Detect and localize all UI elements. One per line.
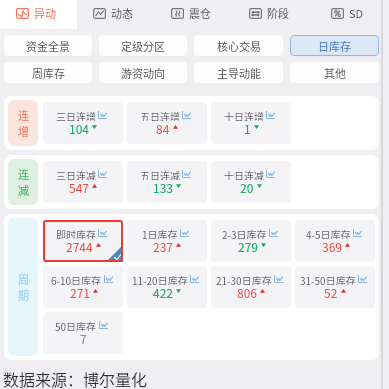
staticText: 31-50日库存	[300, 273, 356, 285]
staticText: 周库存	[32, 65, 65, 81]
button[interactable]: 游资动向	[99, 62, 187, 83]
staticText: 84	[156, 120, 170, 134]
staticText: 三日连增	[56, 109, 96, 121]
button[interactable]: 21-30日库存	[211, 266, 291, 308]
button[interactable]: 三日连减	[43, 161, 123, 203]
staticText: 五日连减	[140, 168, 180, 180]
staticText: 806	[237, 284, 257, 298]
button[interactable]: 日库存	[290, 35, 379, 56]
staticText: 连	[18, 166, 29, 182]
staticText: 547	[69, 179, 89, 193]
button[interactable]: 2-3日库存	[211, 220, 291, 262]
button[interactable]: 定级分区	[99, 35, 187, 56]
button[interactable]: 31-50日库存	[295, 266, 375, 308]
staticText: 20	[240, 179, 254, 193]
button[interactable]: 核心交易	[194, 35, 283, 56]
staticText: 阶段	[267, 5, 289, 21]
button[interactable]: 主导动能	[194, 62, 283, 83]
staticText: 五日连增	[140, 109, 180, 121]
staticText: 游资动向	[121, 65, 165, 81]
staticText: 237	[153, 238, 173, 252]
staticText: 279	[238, 238, 258, 252]
button[interactable]: 震仓	[155, 0, 233, 29]
staticText: 1日库存	[142, 227, 178, 239]
button[interactable]: 阶段	[233, 0, 311, 29]
staticText: 1	[244, 120, 251, 134]
staticText: 2744	[66, 238, 93, 252]
staticText: 增	[18, 123, 29, 139]
staticText: 十日连增	[224, 109, 264, 121]
staticText: 期	[18, 287, 29, 303]
button[interactable]: 11-20日库存	[127, 266, 207, 308]
other: 动态	[93, 8, 106, 19]
other: 震仓	[171, 8, 184, 19]
staticText: 核心交易	[217, 38, 261, 54]
staticText: 422	[153, 284, 173, 298]
staticText: 动态	[111, 5, 133, 21]
staticText: 50日库存	[55, 319, 97, 331]
staticText: 主导动能	[217, 65, 261, 81]
staticText: 数据来源：博尔量化	[3, 367, 148, 389]
staticText: 6-10日库存	[51, 273, 102, 285]
button[interactable]: 五日连减	[127, 161, 207, 203]
other: SD	[331, 8, 344, 19]
other: 阶段	[249, 8, 262, 19]
staticText: 定级分区	[121, 38, 165, 54]
staticText: 减	[18, 182, 29, 198]
staticText: 7	[80, 330, 87, 344]
button[interactable]: 十日连增	[211, 102, 291, 144]
staticText: 其他	[324, 65, 346, 81]
staticText: 271	[70, 284, 90, 298]
button[interactable]: 五日连增	[127, 102, 207, 144]
staticText: 周	[18, 271, 29, 287]
staticText: 4-5日库存	[306, 227, 351, 239]
button[interactable]: 周库存	[4, 62, 92, 83]
staticText: 震仓	[189, 5, 211, 21]
staticText: 133	[153, 179, 173, 193]
staticText: 11-20日库存	[132, 273, 188, 285]
button[interactable]: 三日连增	[43, 102, 123, 144]
button[interactable]: 十日连减	[211, 161, 291, 203]
staticText: 连	[18, 107, 29, 123]
staticText: 异动	[34, 5, 56, 21]
staticText: 21-30日库存	[216, 273, 272, 285]
staticText: SD	[349, 5, 364, 21]
button[interactable]: 其他	[290, 62, 379, 83]
button[interactable]: 50日库存	[43, 312, 123, 354]
staticText: 2-3日库存	[222, 227, 267, 239]
staticText: 三日连减	[56, 168, 96, 180]
button[interactable]: 动态	[77, 0, 155, 29]
button[interactable]: SD	[311, 0, 389, 29]
button[interactable]: 6-10日库存	[43, 266, 123, 308]
staticText: 十日连减	[224, 168, 264, 180]
staticText: 资金全景	[26, 38, 70, 54]
staticText: 104	[69, 120, 89, 134]
button[interactable]: 即时库存	[43, 220, 123, 262]
staticText: 369	[322, 238, 342, 252]
other: 异动	[16, 8, 29, 19]
button[interactable]: 资金全景	[4, 35, 92, 56]
staticText: 52	[324, 284, 338, 298]
staticText: 即时库存	[56, 227, 96, 239]
button[interactable]: 1日库存	[127, 220, 207, 262]
button[interactable]: 4-5日库存	[295, 220, 375, 262]
staticText: 日库存	[318, 38, 351, 54]
button[interactable]: 异动	[0, 0, 77, 29]
